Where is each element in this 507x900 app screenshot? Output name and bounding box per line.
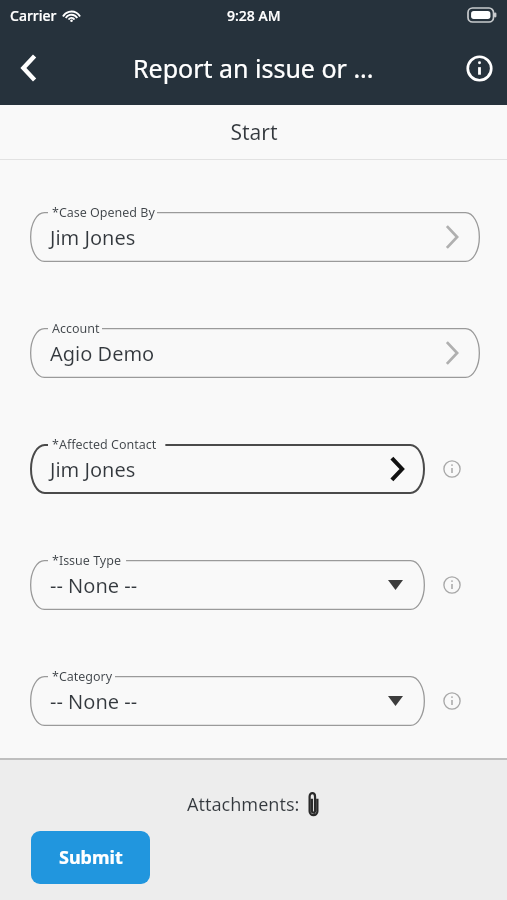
staticText: Agio Demo	[50, 340, 155, 367]
staticText: Attachments:	[187, 792, 300, 817]
staticText: Submit	[59, 845, 123, 870]
staticText: *Category	[52, 668, 113, 685]
staticText: Account	[52, 320, 100, 337]
staticText: Carrier	[10, 6, 57, 25]
button[interactable]: Submit	[31, 831, 150, 884]
staticText: Start	[230, 118, 278, 147]
button[interactable]: *Affected Contact	[30, 432, 425, 494]
button[interactable]: Information	[451, 40, 507, 96]
staticText: *Case Opened By	[52, 204, 155, 221]
button[interactable]: Back	[0, 39, 58, 97]
staticText: -- None --	[50, 572, 138, 599]
staticText: *Issue Type	[52, 552, 121, 569]
staticText: *Affected Contact	[52, 436, 157, 453]
button[interactable]: Attachments:	[187, 791, 320, 817]
button[interactable]: *Case Opened By	[30, 200, 480, 262]
button[interactable]: *Issue Type	[30, 548, 425, 610]
staticText: -- None --	[50, 688, 138, 715]
staticText: 9:28 AM	[227, 6, 281, 25]
staticText: Report an issue or ...	[133, 51, 374, 85]
button[interactable]: Field info	[435, 568, 469, 602]
staticText: Jim Jones	[50, 224, 136, 251]
button[interactable]: Account	[30, 316, 480, 378]
button[interactable]: *Category	[30, 664, 425, 726]
button[interactable]: Field info	[435, 684, 469, 718]
button[interactable]: Field info	[435, 452, 469, 486]
staticText: Jim Jones	[50, 456, 136, 483]
